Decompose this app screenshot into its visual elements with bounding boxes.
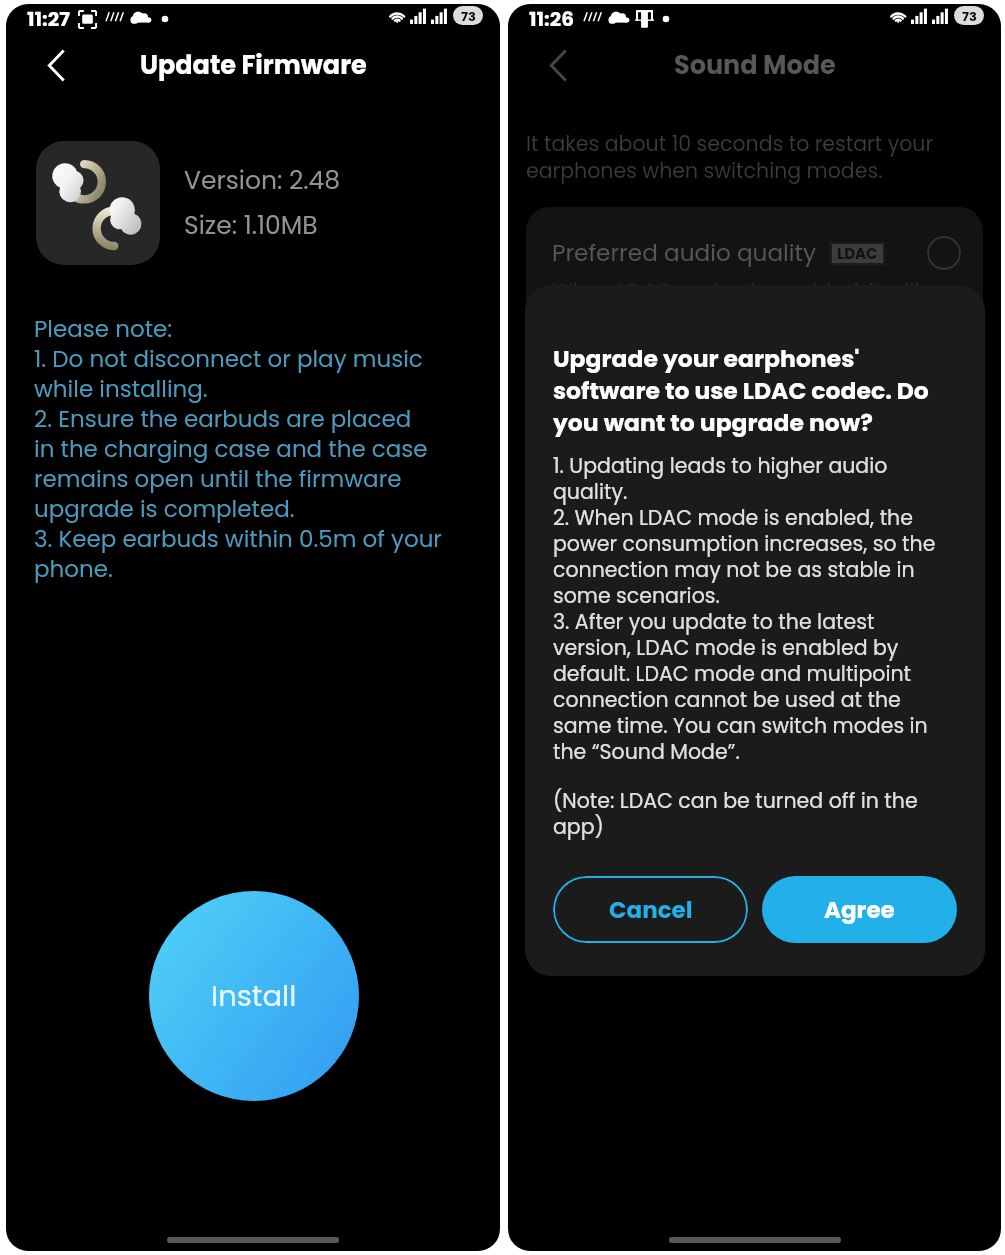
staticText: Agree bbox=[824, 894, 895, 926]
staticText: Install bbox=[211, 976, 297, 1017]
staticText: Cancel bbox=[609, 894, 693, 926]
staticText: (Note: LDAC can be turned off in the app… bbox=[553, 786, 957, 842]
staticText: Size: 1.10MB bbox=[184, 208, 318, 243]
staticText: 73 bbox=[962, 7, 977, 25]
staticText: Sound Mode bbox=[674, 47, 836, 83]
staticText: Preferred audio quality bbox=[552, 237, 817, 269]
staticText: Update Firmware bbox=[140, 47, 367, 83]
staticText: Version: 2.48 bbox=[184, 163, 341, 198]
button[interactable]: Cancel bbox=[553, 876, 748, 943]
staticText: 11:26 bbox=[529, 5, 574, 33]
button[interactable]: Back bbox=[31, 40, 81, 90]
staticText: 1. Updating leads to higher audio qualit… bbox=[553, 451, 957, 767]
staticText: LDAC bbox=[837, 243, 878, 264]
button[interactable]: Select LDAC audio quality bbox=[927, 236, 961, 270]
staticText: It takes about 10 seconds to restart you… bbox=[526, 129, 934, 185]
button[interactable]: Install bbox=[149, 891, 359, 1101]
staticText: Please note: 1. Do not disconnect or pla… bbox=[34, 313, 442, 585]
button[interactable]: Preferred audio quality bbox=[526, 207, 983, 299]
button[interactable]: Agree bbox=[762, 876, 957, 943]
staticText: Upgrade your earphones' software to use … bbox=[553, 342, 957, 439]
staticText: 11:27 bbox=[27, 5, 70, 33]
button[interactable]: Back bbox=[533, 40, 583, 90]
staticText: 73 bbox=[461, 7, 476, 25]
